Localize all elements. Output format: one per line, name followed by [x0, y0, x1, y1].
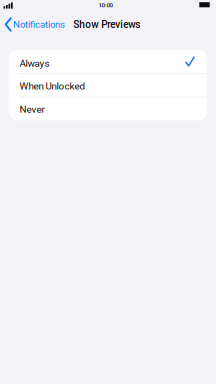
staticText: 10:00 — [99, 2, 113, 9]
button[interactable]: Always — [9, 50, 207, 73]
staticText: When Unlocked — [19, 80, 85, 92]
staticText: Always — [19, 58, 49, 69]
staticText: Show Previews — [73, 19, 140, 30]
button[interactable]: Never — [9, 97, 207, 120]
staticText: Never — [19, 104, 44, 115]
button[interactable]: When Unlocked — [9, 74, 207, 97]
button[interactable]: Back — [0, 17, 65, 31]
staticText: Notifications — [13, 19, 65, 30]
